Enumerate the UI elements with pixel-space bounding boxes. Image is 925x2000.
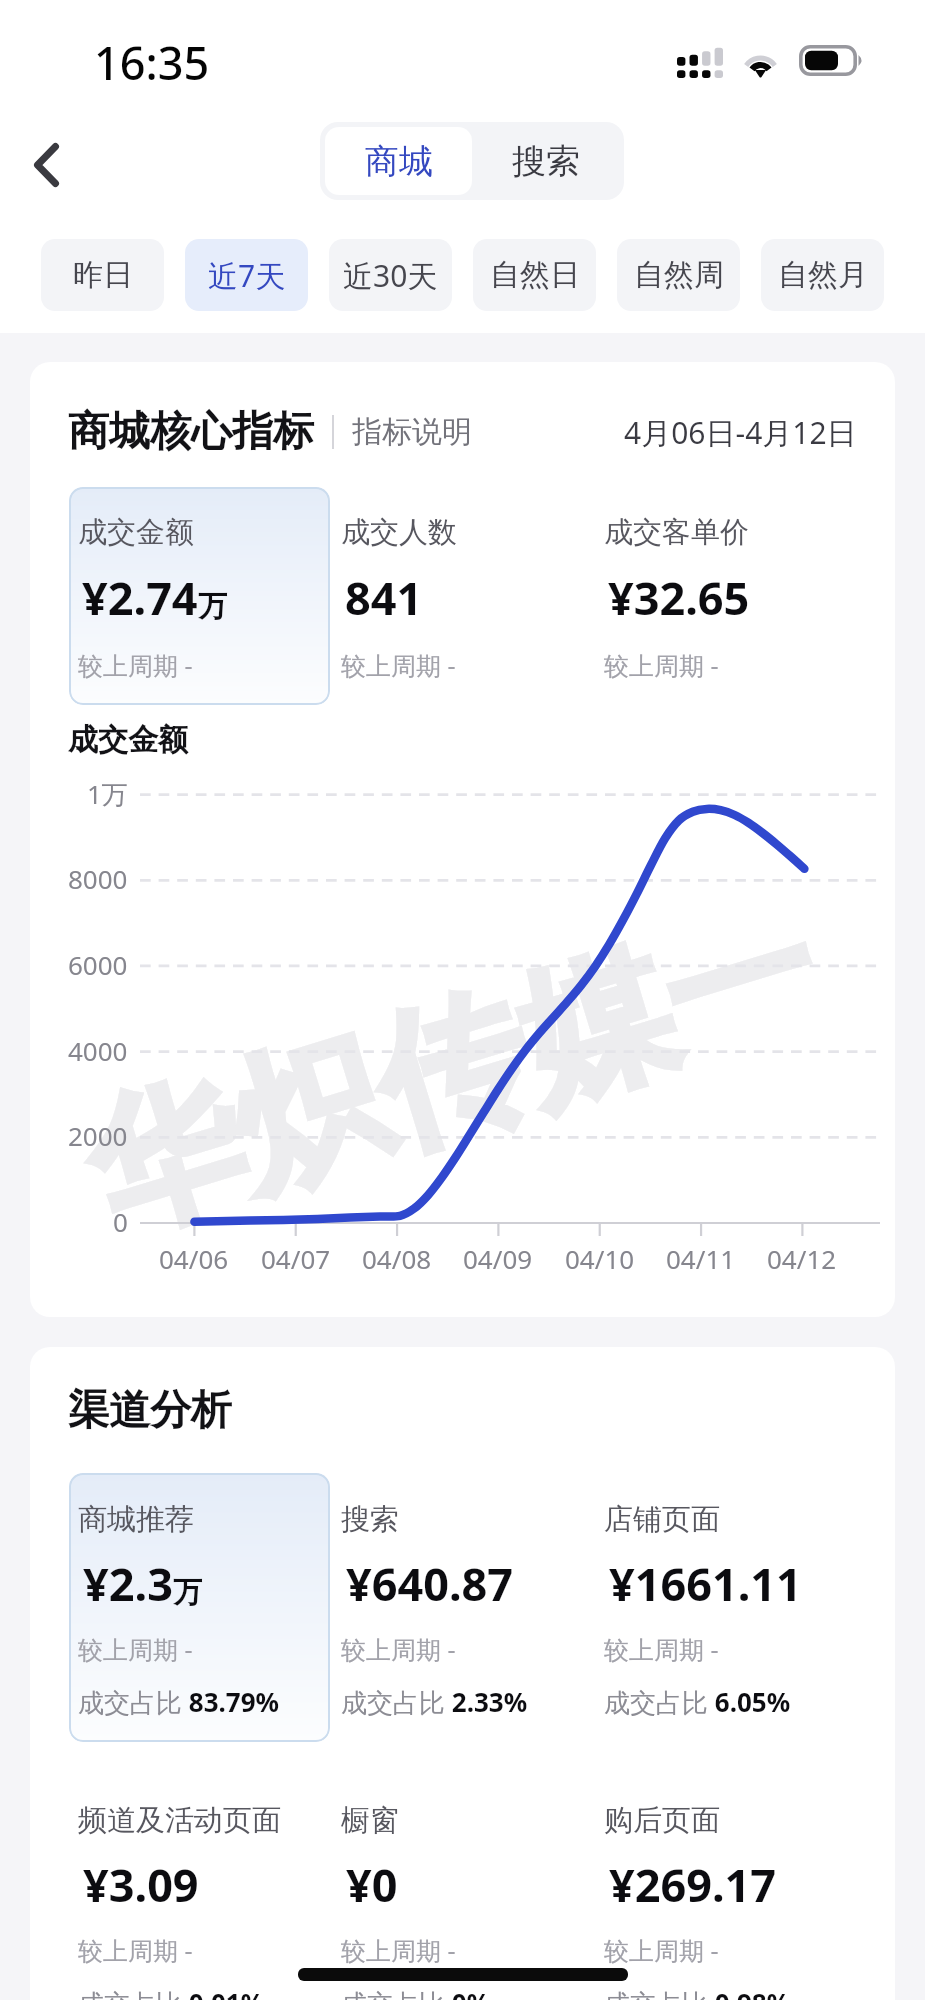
staticText: 频道及活动页面: [78, 1802, 281, 1839]
button[interactable]: 自然月: [761, 239, 884, 311]
staticText: 搜索: [512, 140, 580, 183]
staticText: ¥269.17: [609, 1854, 777, 1915]
button[interactable]: [593, 1473, 856, 1742]
staticText: 万: [198, 588, 227, 625]
staticText: 较上周期 -: [341, 1632, 456, 1666]
staticText: 较上周期 -: [78, 648, 193, 682]
staticText: 近30天: [343, 255, 438, 296]
button[interactable]: [69, 1774, 330, 2000]
staticText: 成交金额: [68, 721, 188, 759]
staticText: ¥1661.11: [609, 1553, 802, 1614]
staticText: 4月06日-4月12日: [624, 412, 857, 453]
button[interactable]: 搜索: [472, 127, 619, 195]
staticText: ¥2.3: [83, 1553, 173, 1614]
staticText: 04/08: [362, 1241, 432, 1276]
staticText: 较上周期 -: [341, 648, 456, 682]
button[interactable]: 昨日: [41, 239, 164, 311]
staticText: 8000: [68, 861, 128, 896]
button[interactable]: [593, 1774, 856, 2000]
staticText: 商城核心指标: [68, 406, 314, 458]
staticText: 店铺页面: [604, 1501, 720, 1538]
button[interactable]: 指标说明: [352, 413, 472, 451]
button[interactable]: [330, 1774, 593, 2000]
staticText: 购后页面: [604, 1802, 720, 1839]
staticText: 成交人数: [341, 514, 457, 551]
staticText: 成交占比 0.98%: [604, 1985, 791, 2000]
staticText: ¥3.09: [83, 1854, 199, 1915]
staticText: 成交金额: [78, 514, 194, 551]
staticText: 841: [345, 567, 423, 628]
staticText: 昨日: [73, 256, 133, 294]
staticText: 04/07: [261, 1241, 331, 1276]
staticText: 成交占比 2.33%: [341, 1684, 528, 1720]
staticText: 渠道分析: [68, 1385, 232, 1437]
staticText: 自然日: [490, 256, 580, 294]
staticText: 较上周期 -: [78, 1632, 193, 1666]
button[interactable]: [69, 1473, 330, 1742]
staticText: 橱窗: [341, 1802, 399, 1839]
button[interactable]: [593, 487, 856, 705]
staticText: 自然月: [778, 256, 868, 294]
staticText: 较上周期 -: [604, 648, 719, 682]
button[interactable]: [330, 1473, 593, 1742]
button[interactable]: [69, 487, 330, 705]
staticText: ¥0: [346, 1854, 398, 1915]
staticText: 商城: [365, 140, 433, 183]
staticText: 2000: [68, 1118, 128, 1153]
staticText: 04/11: [666, 1241, 736, 1276]
staticText: 6000: [68, 947, 128, 982]
staticText: 商城推荐: [78, 1501, 194, 1538]
staticText: 较上周期 -: [604, 1933, 719, 1967]
staticText: 较上周期 -: [78, 1933, 193, 1967]
staticText: ¥2.74: [82, 567, 198, 628]
staticText: 1万: [87, 776, 128, 812]
button[interactable]: [330, 487, 593, 705]
staticText: ¥640.87: [346, 1553, 514, 1614]
staticText: 自然周: [634, 256, 724, 294]
staticText: ¥32.65: [608, 567, 750, 628]
button[interactable]: 自然周: [617, 239, 740, 311]
staticText: 成交占比 6.05%: [604, 1684, 791, 1720]
button[interactable]: 近7天: [185, 239, 308, 311]
staticText: 04/09: [463, 1241, 533, 1276]
staticText: 成交占比 83.79%: [78, 1684, 280, 1720]
staticText: 0: [113, 1204, 128, 1239]
staticText: 04/12: [767, 1241, 837, 1276]
staticText: 搜索: [341, 1501, 399, 1538]
staticText: 04/10: [565, 1241, 635, 1276]
staticText: 成交占比 0%: [341, 1985, 491, 2000]
staticText: 04/06: [159, 1241, 229, 1276]
button[interactable]: Back: [3, 122, 89, 208]
staticText: 较上周期 -: [604, 1632, 719, 1666]
staticText: 较上周期 -: [341, 1933, 456, 1967]
button[interactable]: 近30天: [329, 239, 452, 311]
button[interactable]: 商城: [325, 127, 472, 195]
staticText: 华炽传媒一: [66, 872, 839, 1272]
staticText: 成交客单价: [604, 514, 749, 551]
staticText: 成交占比 0.01%: [78, 1985, 265, 2000]
staticText: 4000: [68, 1033, 128, 1068]
staticText: 近7天: [208, 255, 286, 296]
button[interactable]: 自然日: [473, 239, 596, 311]
staticText: 万: [173, 1574, 202, 1611]
staticText: 16:35: [94, 32, 210, 93]
